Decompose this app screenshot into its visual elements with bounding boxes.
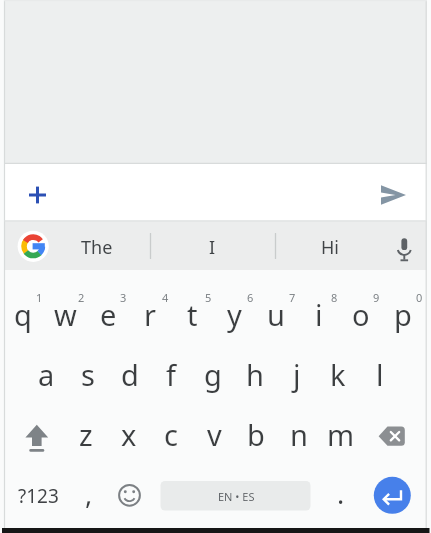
button[interactable]: 3: [115, 290, 131, 304]
staticText: f: [166, 355, 176, 394]
button[interactable]: ,: [70, 465, 108, 521]
staticText: 6: [247, 290, 254, 304]
staticText: t: [187, 295, 198, 334]
staticText: g: [204, 355, 222, 394]
button[interactable]: m: [321, 406, 361, 462]
staticText: e: [100, 295, 117, 334]
staticText: q: [14, 295, 32, 334]
button[interactable]: 2: [73, 290, 89, 304]
staticText: c: [164, 415, 178, 454]
staticText: The: [81, 235, 113, 260]
button[interactable]: [13, 226, 53, 266]
button[interactable]: g: [193, 346, 233, 402]
button[interactable]: c: [151, 406, 191, 462]
button[interactable]: [364, 468, 423, 524]
button[interactable]: i: [299, 286, 339, 342]
button[interactable]: h: [235, 346, 275, 402]
button[interactable]: .: [322, 465, 360, 521]
staticText: I: [209, 235, 216, 260]
staticText: w: [54, 295, 77, 334]
button[interactable]: d: [110, 346, 150, 402]
button[interactable]: 5: [200, 290, 216, 304]
staticText: 2: [78, 290, 85, 304]
button[interactable]: s: [68, 346, 108, 402]
staticText: s: [81, 355, 95, 394]
button[interactable]: EN • ES: [176, 482, 296, 510]
staticText: x: [121, 415, 137, 454]
staticText: .: [337, 475, 345, 512]
staticText: 7: [289, 290, 296, 304]
button[interactable]: o: [341, 286, 381, 342]
button[interactable]: j: [277, 346, 317, 402]
button[interactable]: [372, 174, 415, 217]
staticText: r: [144, 295, 156, 334]
button[interactable]: The: [55, 224, 139, 270]
staticText: u: [267, 295, 285, 334]
staticText: 8: [331, 290, 338, 304]
staticText: EN • ES: [218, 489, 255, 504]
button[interactable]: I: [170, 224, 254, 270]
button[interactable]: ?123: [8, 468, 68, 524]
button[interactable]: 0: [411, 290, 427, 304]
staticText: k: [330, 355, 346, 394]
staticText: 4: [162, 290, 169, 304]
button[interactable]: z: [66, 406, 106, 462]
button[interactable]: a: [26, 346, 66, 402]
staticText: v: [207, 415, 222, 454]
button[interactable]: k: [318, 346, 358, 402]
staticText: i: [315, 295, 323, 334]
button[interactable]: [8, 409, 66, 465]
staticText: 9: [373, 290, 380, 304]
staticText: 1: [36, 290, 43, 304]
button[interactable]: [152, 468, 320, 524]
button[interactable]: 1: [31, 290, 47, 304]
staticText: o: [352, 295, 370, 334]
button[interactable]: Hi: [288, 224, 372, 270]
staticText: d: [121, 355, 139, 394]
staticText: h: [246, 355, 264, 394]
button[interactable]: q: [3, 286, 43, 342]
button[interactable]: [384, 226, 424, 266]
button[interactable]: u: [256, 286, 296, 342]
button[interactable]: 8: [326, 290, 342, 304]
button[interactable]: 9: [368, 290, 384, 304]
staticText: a: [38, 355, 55, 394]
staticText: j: [293, 355, 301, 394]
staticText: 3: [120, 290, 127, 304]
button[interactable]: l: [360, 346, 400, 402]
staticText: 5: [205, 290, 212, 304]
button[interactable]: 4: [157, 290, 173, 304]
button[interactable]: t: [172, 286, 212, 342]
staticText: m: [327, 415, 355, 454]
button[interactable]: p: [383, 286, 423, 342]
button[interactable]: n: [279, 406, 319, 462]
staticText: l: [376, 355, 384, 394]
button[interactable]: 7: [284, 290, 300, 304]
staticText: n: [290, 415, 308, 454]
button[interactable]: y: [214, 286, 254, 342]
button[interactable]: [110, 468, 150, 524]
button[interactable]: v: [194, 406, 234, 462]
button[interactable]: r: [130, 286, 170, 342]
staticText: p: [394, 295, 412, 334]
button[interactable]: x: [109, 406, 149, 462]
staticText: 0: [416, 290, 423, 304]
staticText: Hi: [321, 235, 339, 260]
staticText: ,: [85, 475, 93, 512]
button[interactable]: w: [45, 286, 85, 342]
button[interactable]: f: [151, 346, 191, 402]
button[interactable]: [16, 174, 59, 217]
staticText: y: [227, 295, 242, 334]
button[interactable]: e: [88, 286, 128, 342]
button[interactable]: [366, 409, 423, 465]
staticText: ?123: [18, 483, 59, 509]
staticText: b: [247, 415, 265, 454]
staticText: z: [79, 415, 93, 454]
button[interactable]: 6: [242, 290, 258, 304]
button[interactable]: b: [236, 406, 276, 462]
